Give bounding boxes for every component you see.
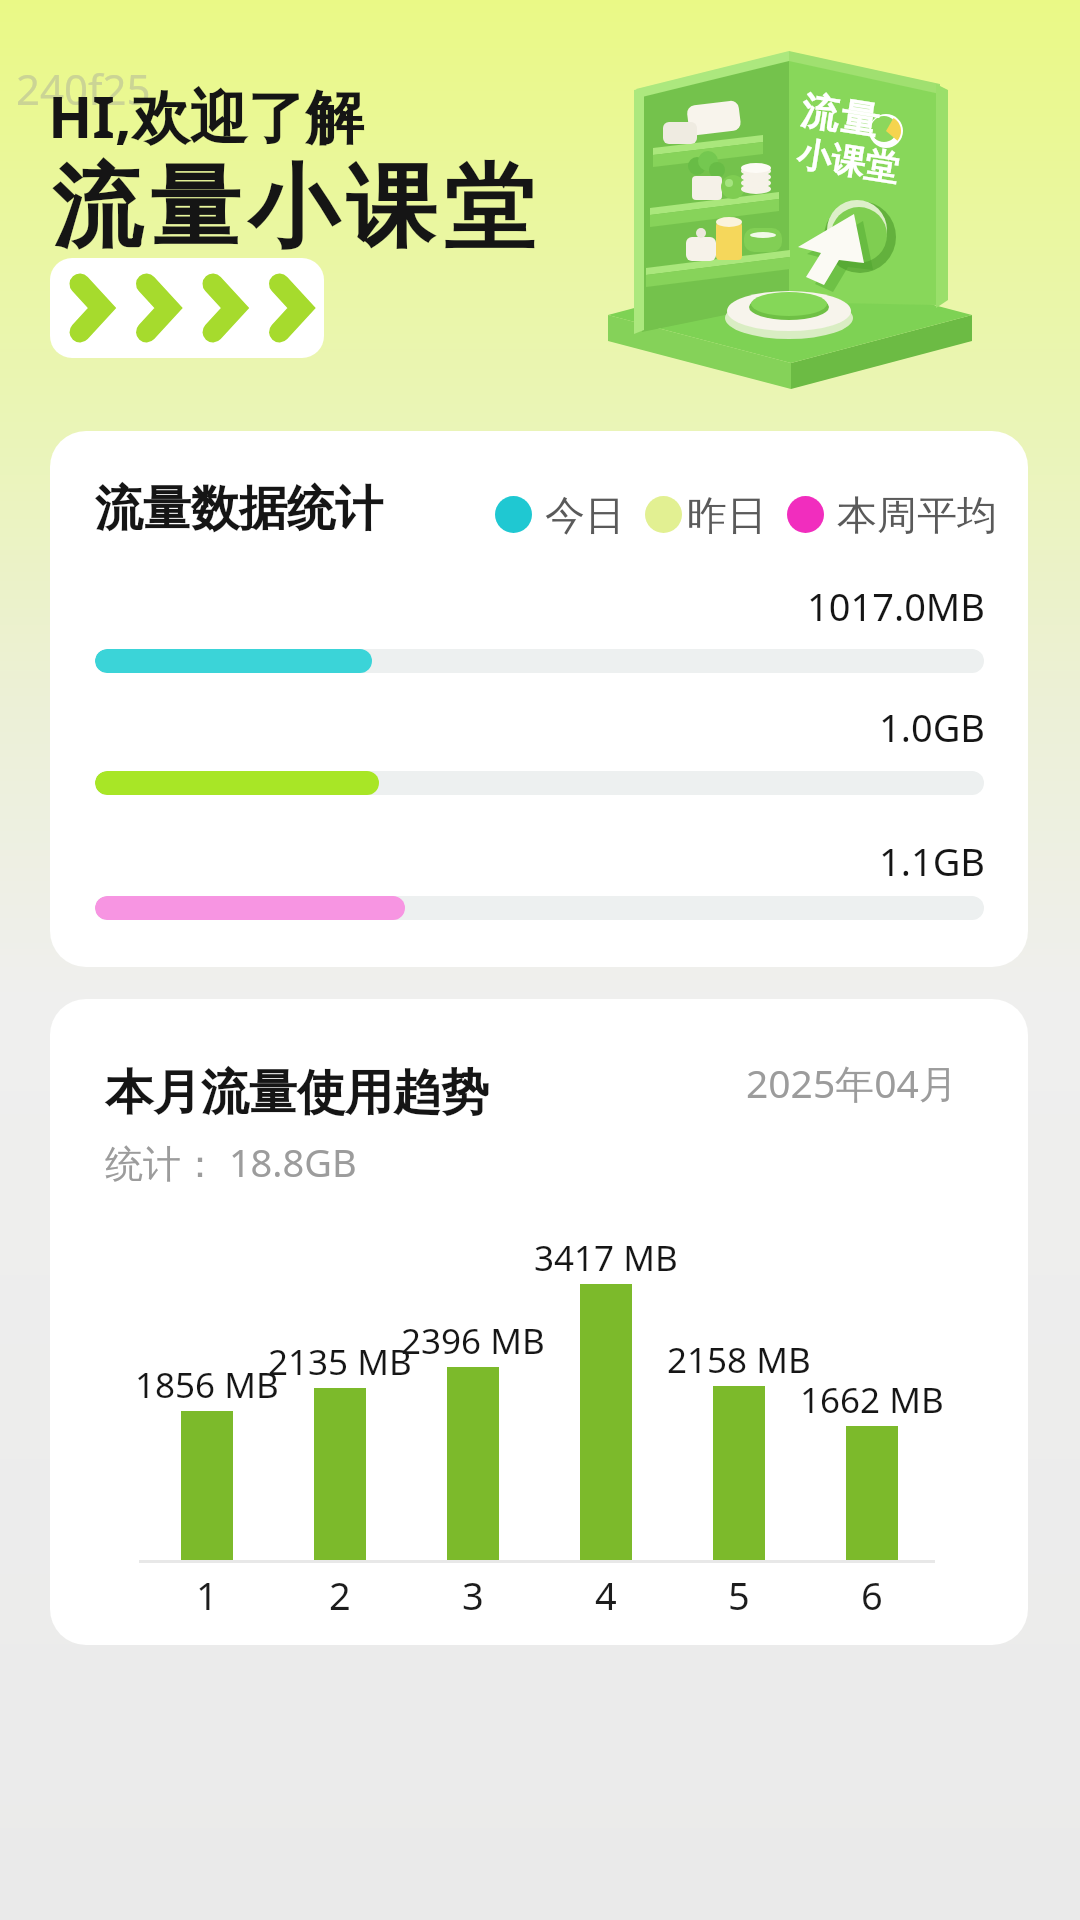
staticText: 5: [728, 1569, 750, 1621]
staticText: 2396 MB: [401, 1317, 545, 1365]
staticText: 本月流量使用趋势: [105, 1063, 489, 1123]
staticText: 流量: [797, 86, 883, 146]
staticText: 统计： 18.8GB: [105, 1136, 357, 1188]
staticText: 1856 MB: [135, 1361, 279, 1409]
staticText: 1: [196, 1569, 218, 1621]
staticText: 1.0GB: [879, 701, 986, 753]
staticText: 3: [462, 1569, 484, 1621]
staticText: 今日: [545, 490, 625, 540]
staticText: 1.1GB: [879, 835, 986, 887]
staticText: 4: [595, 1569, 617, 1621]
staticText: 2025年04月: [746, 1056, 958, 1109]
staticText: 1017.0MB: [807, 580, 986, 632]
staticText: 小课堂: [794, 132, 902, 191]
staticText: 本周平均: [837, 490, 997, 540]
staticText: 6: [861, 1569, 883, 1621]
staticText: 1662 MB: [800, 1376, 944, 1424]
staticText: 2135 MB: [268, 1338, 412, 1386]
staticText: 240f25: [16, 60, 151, 117]
button[interactable]: [50, 258, 324, 358]
staticText: 流量小课堂: [48, 151, 538, 264]
staticText: HI,欢迎了解: [48, 76, 364, 155]
staticText: 昨日: [687, 490, 767, 540]
staticText: 流量数据统计: [95, 479, 383, 539]
staticText: 2158 MB: [667, 1336, 811, 1384]
staticText: 2: [329, 1569, 351, 1621]
staticText: 3417 MB: [534, 1234, 678, 1282]
